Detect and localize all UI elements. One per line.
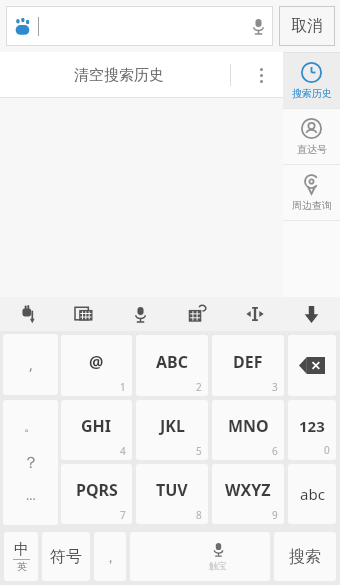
staticText: 4 xyxy=(120,444,126,458)
staticText: DEF xyxy=(233,351,263,373)
staticText: 3 xyxy=(272,380,278,394)
button[interactable]: JKL xyxy=(136,400,208,460)
button[interactable]: WXYZ xyxy=(212,464,284,524)
button[interactable]: @ xyxy=(61,335,132,396)
staticText: GHI xyxy=(81,415,112,437)
button[interactable]: 收起键盘 xyxy=(283,297,340,331)
button[interactable]: 符号 xyxy=(42,532,90,581)
staticText: ··· xyxy=(26,491,36,507)
button[interactable]: ABC xyxy=(136,335,208,396)
staticText: 8 xyxy=(196,508,202,522)
staticText: WXYZ xyxy=(225,479,271,501)
staticText: 直达号 xyxy=(297,143,327,156)
staticText: ？ xyxy=(23,453,39,473)
staticText: @ xyxy=(89,351,104,373)
staticText: 2 xyxy=(196,380,202,394)
button[interactable]: PQRS xyxy=(61,464,132,524)
button[interactable]: DEF xyxy=(212,335,284,396)
staticText: TUV xyxy=(156,479,188,501)
staticText: 0 xyxy=(324,443,330,457)
button[interactable]: 更多 xyxy=(239,52,283,98)
button[interactable]: 取消 xyxy=(279,6,335,46)
button[interactable]: 123 xyxy=(288,400,336,460)
staticText: 6 xyxy=(272,444,278,458)
staticText: abc xyxy=(300,484,325,504)
button[interactable]: 光标移动 xyxy=(226,297,283,331)
staticText: 清空搜索历史 xyxy=(74,66,164,85)
staticText: 触宝 xyxy=(209,560,227,571)
staticText: 123 xyxy=(299,416,325,436)
staticText: 中 xyxy=(14,540,29,559)
button[interactable]: 周边查询 xyxy=(283,165,340,220)
staticText: 9 xyxy=(272,508,278,522)
button[interactable]: 。 xyxy=(3,400,58,525)
staticText: 取消 xyxy=(291,16,323,36)
button[interactable]: 键盘设置 xyxy=(169,297,226,331)
button[interactable]: 清空搜索历史 xyxy=(0,52,283,98)
staticText: 英 xyxy=(17,560,27,573)
button[interactable]: 空格 语音 xyxy=(130,532,270,581)
button[interactable]: abc xyxy=(288,464,336,524)
button[interactable]: 直达号 xyxy=(283,109,340,164)
button[interactable]: ， xyxy=(94,532,126,581)
button[interactable]: 手写 xyxy=(0,297,56,331)
staticText: 符号 xyxy=(50,547,82,567)
staticText: ， xyxy=(104,549,117,565)
button[interactable]: 键盘布局 xyxy=(56,297,112,331)
button[interactable]: 退格 xyxy=(288,335,336,396)
staticText: 搜索历史 xyxy=(292,87,332,100)
button[interactable]: , xyxy=(3,334,58,395)
staticText: ABC xyxy=(156,351,188,373)
staticText: , xyxy=(29,355,33,374)
button[interactable]: 搜索 xyxy=(274,532,336,581)
button[interactable]: 中 xyxy=(4,532,38,581)
staticText: 1 xyxy=(120,380,126,394)
button[interactable]: MNO xyxy=(212,400,284,460)
staticText: 。 xyxy=(24,418,37,434)
staticText: 周边查询 xyxy=(292,199,332,212)
button[interactable]: TUV xyxy=(136,464,208,524)
staticText: MNO xyxy=(228,415,269,437)
button[interactable]: GHI xyxy=(61,400,132,460)
staticText: PQRS xyxy=(76,479,118,501)
staticText: 搜索 xyxy=(289,547,321,567)
staticText: JKL xyxy=(160,415,185,437)
button[interactable]: 搜索历史 xyxy=(283,53,340,108)
button[interactable]: 语音输入 xyxy=(112,297,169,331)
staticText: 7 xyxy=(120,508,126,522)
staticText: 5 xyxy=(196,444,202,458)
button[interactable] xyxy=(6,6,273,46)
